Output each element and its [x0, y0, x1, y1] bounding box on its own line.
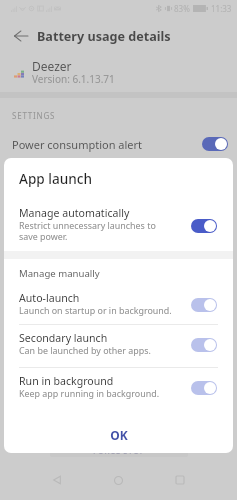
staticText: Can be launched by other apps.: [19, 344, 151, 356]
button[interactable]: Toggle: [191, 219, 217, 233]
staticText: Deezer: [32, 58, 72, 74]
staticText: Battery usage details: [37, 28, 171, 45]
button[interactable]: FORCE STOP: [50, 443, 188, 457]
button[interactable]: Power consumption alert: [0, 132, 237, 156]
staticText: SETTINGS: [12, 110, 56, 121]
staticText: OK: [110, 427, 128, 443]
staticText: Restrict unnecessary launches to save po…: [19, 219, 156, 243]
staticText: 11:33: [211, 3, 232, 14]
staticText: Launch on startup or in background.: [19, 304, 172, 316]
staticText: Manage automatically: [19, 206, 130, 220]
staticText: Run in background: [19, 374, 114, 388]
button[interactable]: Toggle: [191, 298, 217, 312]
button[interactable]: Home: [110, 472, 126, 488]
staticText: App launch: [19, 169, 92, 188]
button[interactable]: Toggle: [202, 137, 228, 151]
staticText: Power consumption alert: [12, 137, 143, 152]
staticText: Manage manually: [19, 267, 100, 280]
staticText: Keep app running in background.: [19, 387, 160, 399]
staticText: 83%: [174, 3, 190, 14]
button[interactable]: Back: [13, 29, 28, 43]
staticText: Auto-launch: [19, 291, 80, 305]
button[interactable]: Recents: [172, 472, 188, 488]
button[interactable]: Back: [49, 472, 65, 488]
button[interactable]: OK: [4, 420, 233, 450]
button[interactable]: Toggle: [191, 338, 217, 352]
staticText: Version: 6.1.13.71: [32, 72, 115, 86]
staticText: Secondary launch: [19, 331, 108, 345]
staticText: FORCE STOP: [93, 445, 146, 456]
button[interactable]: Toggle: [191, 381, 217, 395]
